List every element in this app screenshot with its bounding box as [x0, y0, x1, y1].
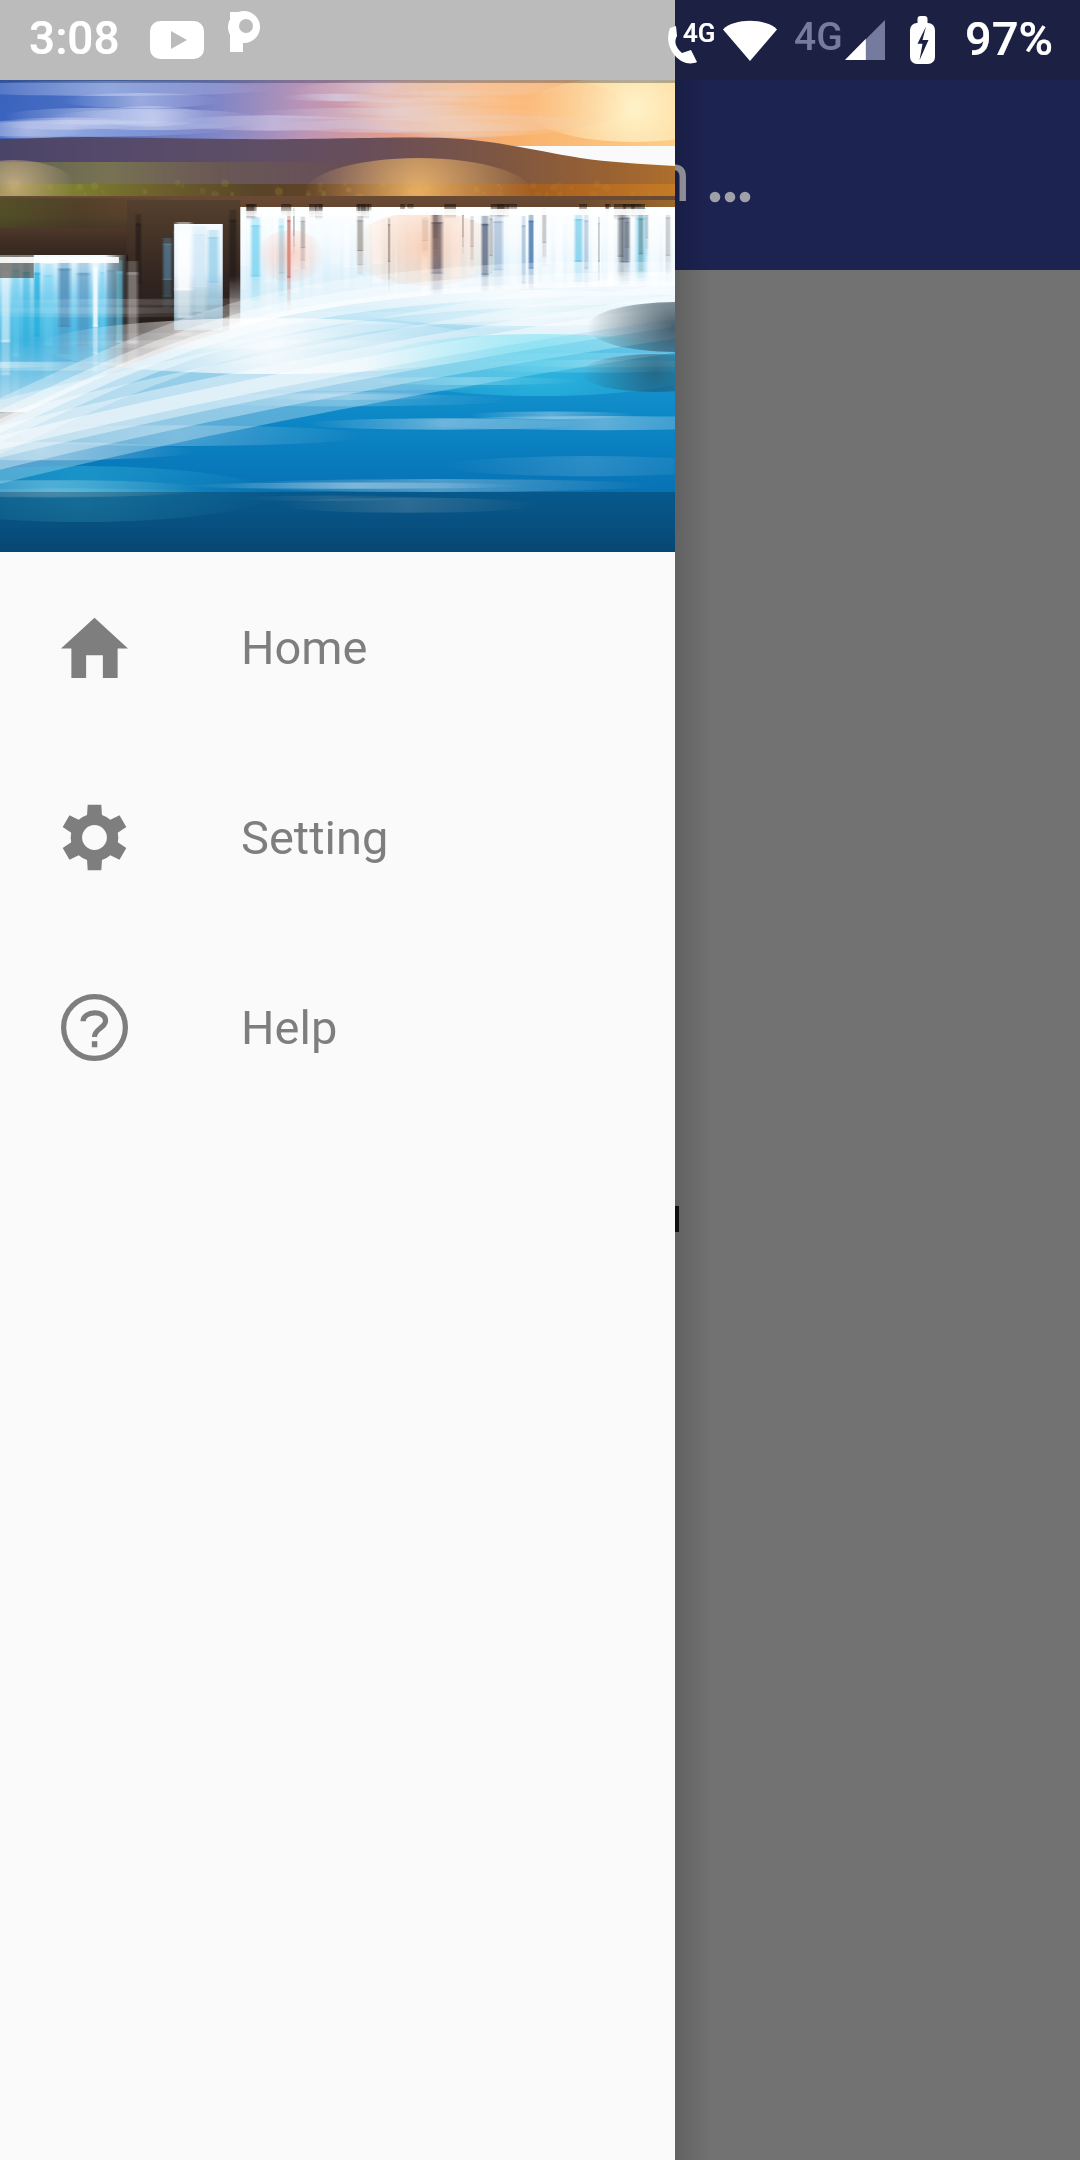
staticText: Help [241, 1000, 338, 1055]
staticText: Setting [241, 810, 389, 865]
staticText: Home [241, 620, 368, 675]
staticText: Navigation [361, 137, 691, 218]
button[interactable]: Close navigation drawer [675, 0, 1080, 2160]
staticText: 4G [683, 18, 716, 48]
button[interactable]: Help [0, 932, 675, 1122]
button[interactable]: More options [680, 147, 780, 247]
staticText: 97% [965, 11, 1053, 66]
button[interactable]: Home [0, 552, 675, 742]
staticText: 3:08 [29, 11, 120, 65]
staticText: 4G [794, 14, 843, 60]
button[interactable]: Setting [0, 742, 675, 932]
